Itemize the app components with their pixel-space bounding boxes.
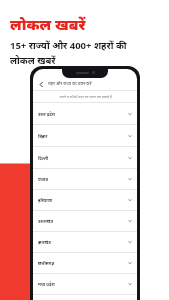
button[interactable]: दिल्ली (33, 147, 137, 168)
button[interactable]: पंजाब (33, 169, 137, 189)
button[interactable]: उत्तराखंड (33, 211, 137, 231)
button[interactable]: मध्य प्रदेश (33, 274, 137, 294)
staticText: छत्तीसगढ़ (38, 260, 54, 266)
staticText: हरियाणा (38, 197, 53, 203)
staticText: लोकल खबरें (10, 14, 86, 34)
staticText: पंजाब (38, 176, 48, 182)
staticText: अपने व राज्यों शहर का चयन कर सकते हैं (59, 94, 112, 99)
button[interactable]: Back (37, 80, 46, 89)
button[interactable]: छत्तीसगढ़ (33, 253, 137, 273)
button[interactable]: उत्तर प्रदेश (33, 103, 137, 124)
staticText: 15+ राज्यों और 400+ शहरों की (10, 39, 127, 52)
staticText: झारखंड (38, 239, 51, 245)
staticText: मध्य प्रदेश (38, 281, 55, 287)
button[interactable]: बिहार (33, 125, 137, 146)
staticText: उत्तराखंड (38, 218, 53, 224)
staticText: दिल्ली (38, 155, 49, 161)
staticText: शहर और राज्य का चयन करें (48, 81, 92, 87)
button[interactable]: हरियाणा (33, 190, 137, 210)
button[interactable]: झारखंड (33, 232, 137, 252)
staticText: उत्तर प्रदेश (38, 111, 55, 117)
staticText: बिहार (38, 133, 48, 139)
staticText: लोकल खबरें (10, 54, 56, 67)
